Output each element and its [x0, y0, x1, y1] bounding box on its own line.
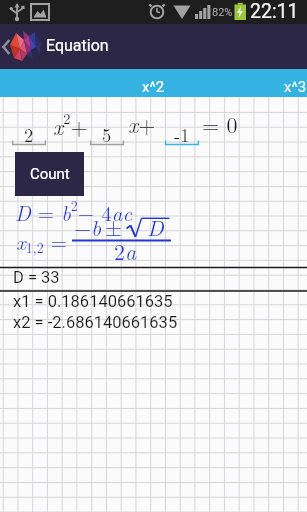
staticText: x2+: [53, 108, 88, 142]
staticText: Equation: [46, 36, 109, 55]
staticText: 5: [102, 121, 112, 144]
staticText: D: [147, 211, 164, 242]
staticText: x^3: [284, 78, 307, 96]
button[interactable]: 5: [90, 121, 124, 144]
staticText: Count: [30, 165, 70, 183]
staticText: x^2: [142, 78, 165, 96]
staticText: D = 33: [13, 268, 60, 287]
staticText: 2: [24, 121, 34, 144]
staticText: x1 = 0.186140661635: [13, 292, 173, 311]
staticText: = 0: [202, 108, 238, 139]
button[interactable]: x^3: [281, 76, 307, 98]
staticText: x1,2 =: [16, 226, 67, 257]
staticText: 2a: [114, 235, 137, 266]
button[interactable]: x^2: [137, 76, 169, 98]
staticText: −b: [74, 211, 102, 242]
staticText: x2 = -2.686140661635: [13, 313, 178, 332]
staticText: ±: [105, 211, 123, 242]
staticText: 82%: [212, 6, 233, 19]
button[interactable]: Count: [15, 152, 84, 196]
button[interactable]: 2: [12, 121, 46, 144]
staticText: D = b2− 4ac: [15, 195, 133, 227]
staticText: x+: [128, 108, 156, 139]
staticText: 22:11: [250, 0, 299, 23]
button[interactable]: -1: [165, 121, 199, 144]
staticText: -1: [174, 121, 190, 144]
